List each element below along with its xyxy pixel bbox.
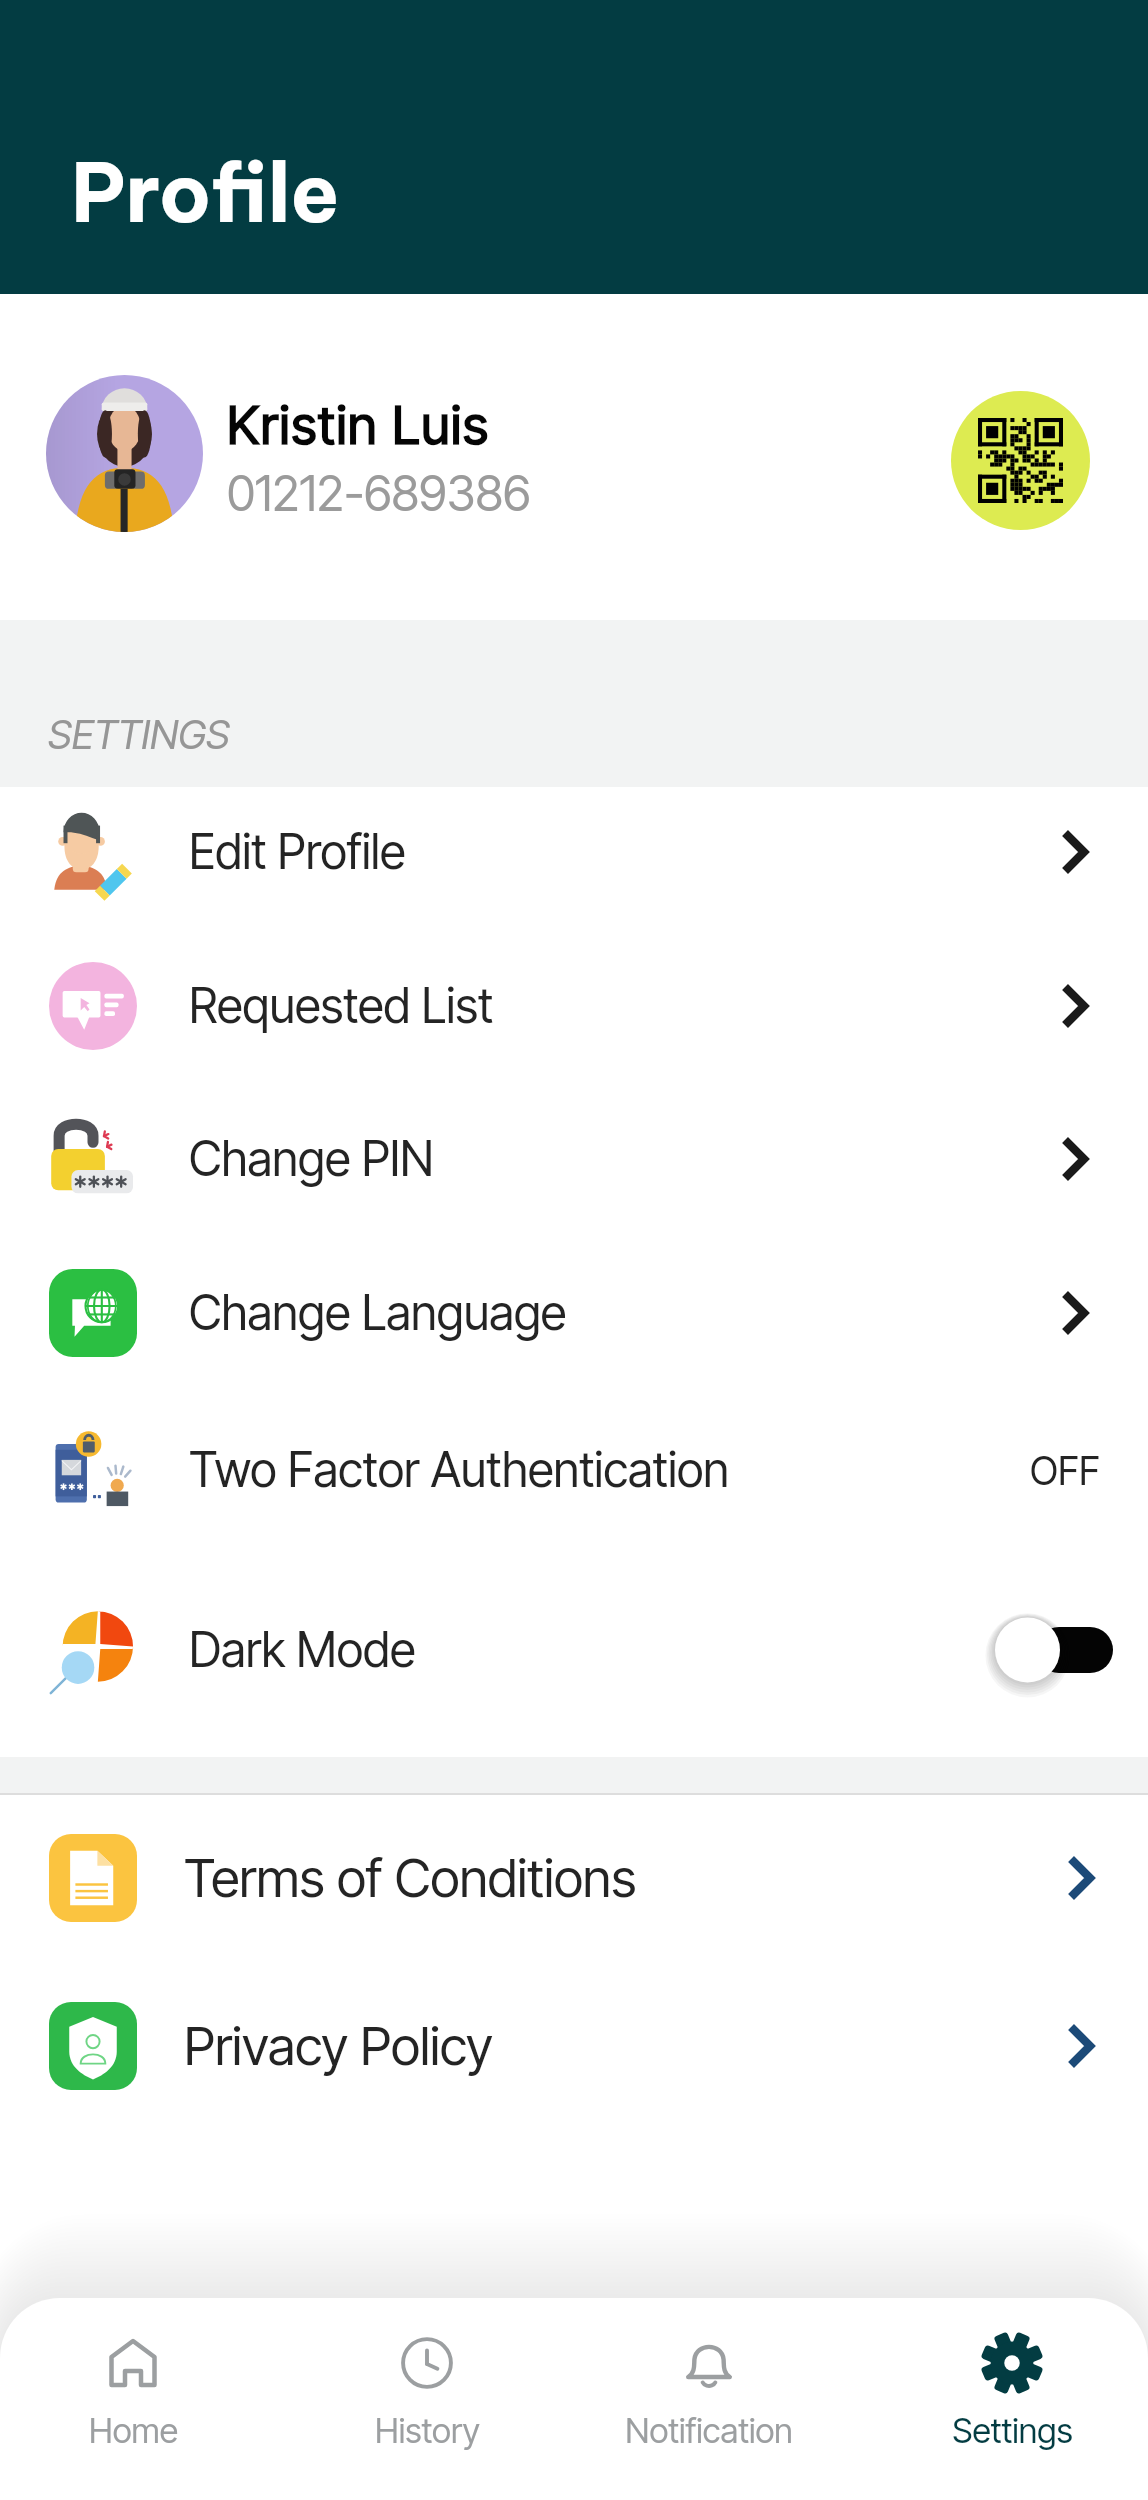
staticText: 01212-689386	[227, 464, 531, 523]
other: History	[401, 2337, 453, 2389]
staticText: SETTINGS	[48, 710, 230, 758]
staticText: Requested List	[189, 977, 1122, 1035]
staticText: Change PIN	[189, 1130, 1122, 1188]
staticText: Privacy Policy	[184, 2014, 1122, 2078]
staticText: Edit Profile	[189, 823, 1122, 881]
other: Home	[108, 2338, 158, 2388]
staticText: Dark Mode	[189, 1621, 1030, 1679]
staticText: Kristin Luis	[227, 393, 490, 457]
button[interactable]: Notification	[594, 2327, 824, 2500]
button[interactable]: Privacy Policy	[0, 1971, 1148, 2121]
other: Notification	[683, 2337, 735, 2389]
button[interactable]: Requested List	[0, 931, 1148, 1081]
button[interactable]: Settings	[897, 2327, 1127, 2500]
staticText: Home	[89, 2410, 178, 2451]
button[interactable]: Two Factor Authentication	[0, 1395, 1148, 1545]
button[interactable]: Change PIN	[0, 1084, 1148, 1234]
button[interactable]: Dark Mode	[0, 1575, 1148, 1725]
button[interactable]: Home	[18, 2327, 248, 2500]
button[interactable]: Show QR code	[951, 391, 1090, 530]
staticText: Notification	[625, 2410, 793, 2451]
button[interactable]: History	[312, 2327, 542, 2500]
staticText: Two Factor Authentication	[189, 1441, 1077, 1499]
staticText: Settings	[952, 2410, 1073, 2451]
button[interactable]: Terms of Conditions	[0, 1803, 1148, 1953]
staticText: Terms of Conditions	[184, 1846, 1122, 1910]
other: Settings	[981, 2332, 1043, 2394]
button[interactable]: Change Language	[0, 1238, 1148, 1388]
staticText: History	[375, 2410, 480, 2451]
staticText: Profile	[71, 141, 340, 243]
button[interactable]: Dark Mode toggle	[995, 1613, 1113, 1687]
staticText: Change Language	[189, 1284, 1122, 1342]
staticText: OFF	[1030, 1447, 1101, 1494]
button[interactable]: Edit Profile	[0, 777, 1148, 927]
